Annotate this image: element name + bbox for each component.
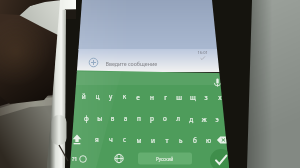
button[interactable]: Phone showing Russian keyboard: [0, 0, 300, 168]
